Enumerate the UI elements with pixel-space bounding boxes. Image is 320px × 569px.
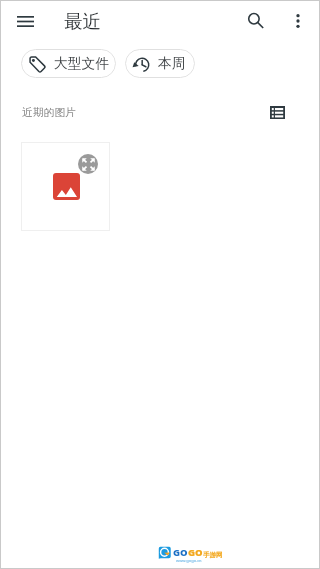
button[interactable]: Expand preview [21, 142, 110, 231]
button[interactable]: Search [240, 5, 272, 37]
staticText: 大型文件 [54, 55, 110, 72]
button[interactable]: Navigation menu [7, 3, 43, 39]
staticText: GO [173, 546, 188, 559]
button[interactable]: More options [282, 5, 314, 37]
staticText: 近期的图片 [22, 106, 76, 120]
staticText: GO [188, 546, 203, 559]
button[interactable]: 大型文件 [21, 49, 116, 78]
staticText: www.gogo.cn [176, 558, 202, 563]
staticText: 最近 [64, 10, 101, 33]
staticText: 手游网 [203, 551, 223, 559]
button[interactable]: Expand preview [78, 154, 98, 174]
button[interactable]: 本周 [125, 49, 195, 78]
staticText: 本周 [158, 55, 186, 72]
button[interactable]: Switch to list view [263, 98, 292, 127]
